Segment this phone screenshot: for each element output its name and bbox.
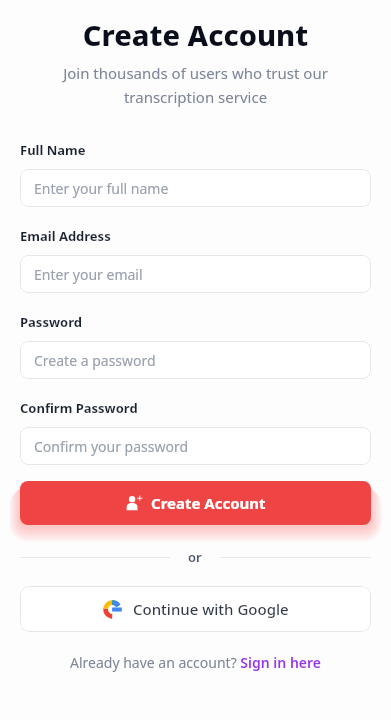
button[interactable]: Create a password	[20, 341, 371, 379]
staticText: Create a password	[34, 351, 156, 370]
staticText: Password	[20, 313, 82, 331]
button[interactable]: Google logo	[20, 586, 371, 632]
button[interactable]: Already have an account? Sign in here	[70, 653, 321, 672]
staticText: Confirm your password	[34, 437, 189, 456]
staticText: Confirm Password	[20, 399, 138, 417]
staticText: Email Address	[20, 227, 111, 245]
button[interactable]: Confirm your password	[20, 427, 371, 465]
staticText: Create Account	[151, 493, 266, 513]
other: Google logo	[103, 600, 122, 619]
staticText: or	[188, 548, 202, 566]
staticText: Create Account	[20, 15, 371, 54]
button[interactable]: Enter your email	[20, 255, 371, 293]
button[interactable]: Enter your full name	[20, 169, 371, 207]
staticText: Continue with Google	[133, 599, 289, 619]
button[interactable]: Create Account	[20, 481, 371, 525]
staticText: Enter your email	[34, 265, 143, 284]
staticText: Enter your full name	[34, 179, 169, 198]
staticText: Full Name	[20, 141, 86, 159]
staticText: Join thousands of users who trust our tr…	[24, 63, 367, 107]
